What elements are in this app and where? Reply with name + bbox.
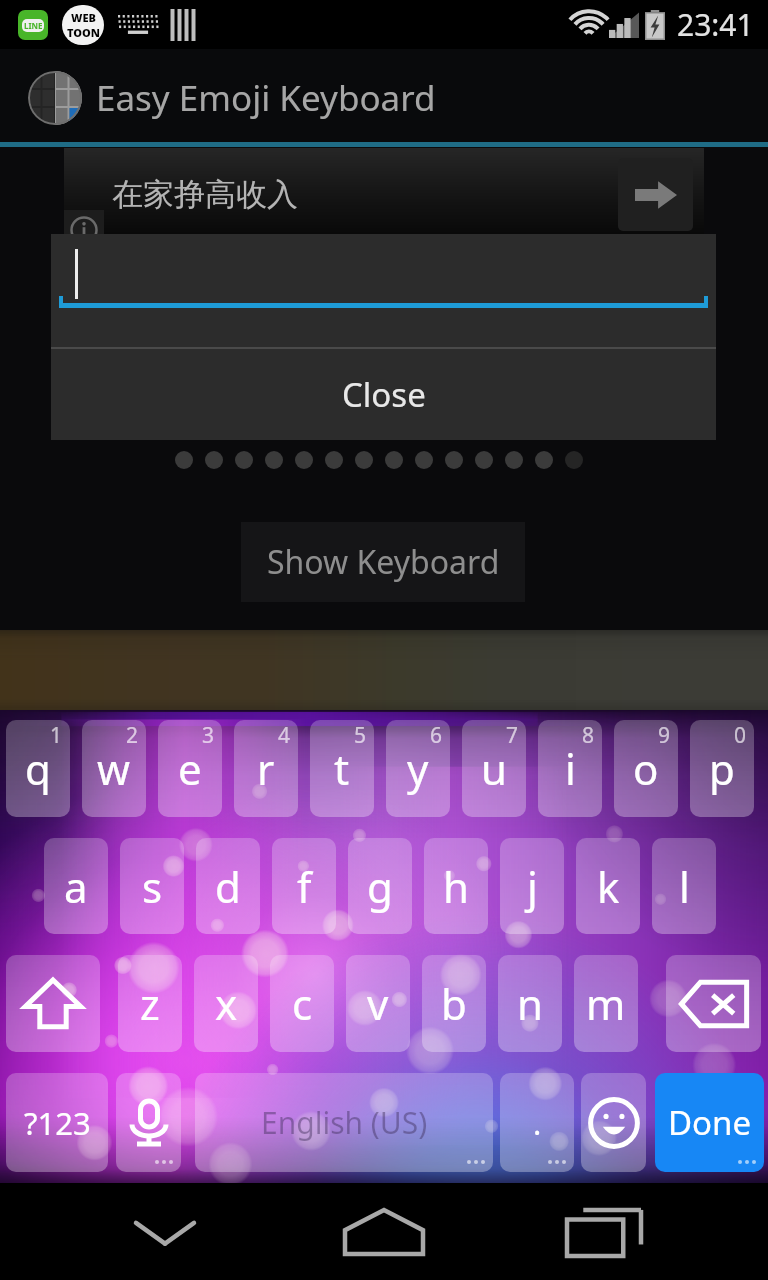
button[interactable]: Emoji: [581, 1073, 646, 1172]
staticText: w: [97, 740, 131, 797]
button[interactable]: t: [310, 720, 374, 817]
staticText: q: [25, 740, 51, 797]
button[interactable]: Back: [110, 1197, 220, 1267]
button[interactable]: u: [462, 720, 526, 817]
button[interactable]: Show Keyboard: [241, 522, 525, 602]
staticText: e: [178, 740, 202, 797]
staticText: c: [292, 975, 313, 1032]
staticText: y: [407, 740, 429, 797]
staticText: Easy Emoji Keyboard: [96, 74, 436, 122]
staticText: r: [257, 740, 275, 797]
staticText: Show Keyboard: [267, 540, 500, 584]
staticText: a: [64, 858, 88, 915]
staticText: 7: [506, 721, 519, 750]
staticText: 在家挣高收入: [112, 175, 298, 214]
staticText: j: [527, 858, 538, 915]
button[interactable]: s: [120, 838, 184, 934]
staticText: k: [597, 858, 620, 915]
staticText: LINE: [24, 20, 43, 31]
staticText: TOON: [67, 25, 100, 40]
button[interactable]: x: [194, 955, 258, 1052]
button[interactable]: l: [652, 838, 716, 934]
staticText: m: [586, 975, 626, 1032]
staticText: b: [441, 975, 467, 1032]
button[interactable]: Voice input: [116, 1073, 181, 1172]
staticText: ?123: [24, 1102, 91, 1144]
staticText: t: [334, 740, 350, 797]
staticText: 0: [734, 721, 747, 750]
button[interactable]: Done: [655, 1073, 764, 1172]
staticText: 5: [354, 721, 367, 750]
staticText: s: [142, 858, 163, 915]
button[interactable]: d: [196, 838, 260, 934]
staticText: i: [565, 740, 576, 797]
button[interactable]: b: [422, 955, 486, 1052]
button[interactable]: n: [498, 955, 562, 1052]
button[interactable]: h: [424, 838, 488, 934]
staticText: 23:41: [677, 4, 754, 45]
button[interactable]: Close: [51, 349, 716, 440]
button[interactable]: a: [44, 838, 108, 934]
button[interactable]: ?123: [6, 1073, 108, 1172]
button[interactable]: i: [538, 720, 602, 817]
staticText: 6: [430, 721, 443, 750]
staticText: n: [517, 975, 543, 1032]
staticText: z: [140, 975, 160, 1032]
staticText: g: [367, 858, 393, 915]
button[interactable]: q: [6, 720, 70, 817]
staticText: 4: [278, 721, 291, 750]
staticText: Done: [668, 1100, 752, 1145]
button[interactable]: p: [690, 720, 754, 817]
staticText: 3: [202, 721, 215, 750]
staticText: Close: [342, 372, 426, 417]
staticText: WEB: [71, 10, 96, 25]
staticText: f: [297, 858, 312, 915]
button[interactable]: Shift: [6, 955, 100, 1052]
button[interactable]: Open advertisement: [618, 158, 693, 231]
staticText: o: [633, 740, 659, 797]
button[interactable]: m: [574, 955, 638, 1052]
staticText: h: [443, 858, 469, 915]
staticText: p: [709, 740, 735, 797]
button[interactable]: 在家挣高收入: [64, 148, 704, 240]
staticText: u: [481, 740, 507, 797]
staticText: 8: [582, 721, 595, 750]
button[interactable]: w: [82, 720, 146, 817]
button[interactable]: f: [272, 838, 336, 934]
button[interactable]: e: [158, 720, 222, 817]
button[interactable]: g: [348, 838, 412, 934]
staticText: x: [215, 975, 238, 1032]
button[interactable]: y: [386, 720, 450, 817]
button[interactable]: z: [118, 955, 182, 1052]
staticText: 9: [658, 721, 671, 750]
button[interactable]: c: [270, 955, 334, 1052]
button[interactable]: o: [614, 720, 678, 817]
button[interactable]: Backspace: [666, 955, 761, 1052]
button[interactable]: k: [576, 838, 640, 934]
button[interactable]: r: [234, 720, 298, 817]
button[interactable]: English (US): [195, 1073, 493, 1172]
button[interactable]: .: [500, 1073, 574, 1172]
staticText: 2: [126, 721, 139, 750]
staticText: .: [533, 1102, 542, 1144]
staticText: d: [215, 858, 241, 915]
button[interactable]: v: [346, 955, 410, 1052]
button[interactable]: Recent apps: [549, 1197, 659, 1267]
staticText: 1: [50, 721, 63, 750]
staticText: English (US): [261, 1102, 428, 1143]
button[interactable]: Home: [329, 1197, 439, 1267]
staticText: v: [367, 975, 389, 1032]
button[interactable]: j: [500, 838, 564, 934]
staticText: l: [679, 858, 690, 915]
